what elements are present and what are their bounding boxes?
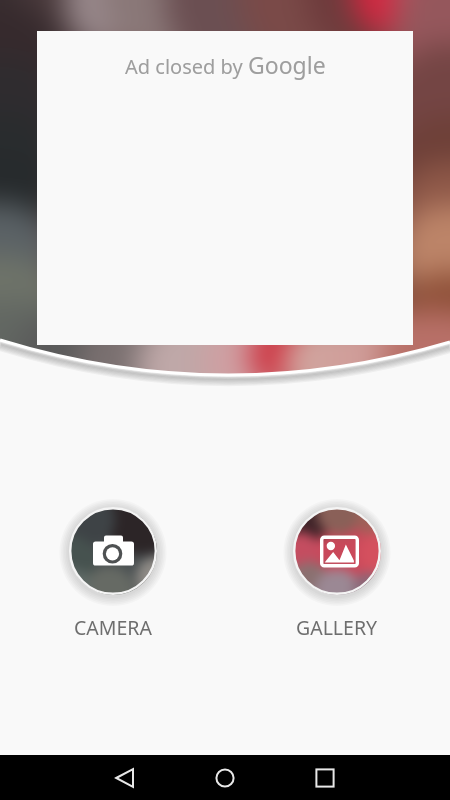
button[interactable]: Back bbox=[103, 756, 147, 800]
staticText: GALLERY bbox=[296, 614, 378, 641]
button[interactable]: Recents bbox=[303, 756, 347, 800]
button[interactable]: CAMERA bbox=[63, 501, 163, 601]
staticText: Google bbox=[248, 49, 326, 80]
staticText: CAMERA bbox=[74, 614, 152, 641]
button[interactable]: GALLERY bbox=[287, 501, 387, 601]
button[interactable]: Home bbox=[203, 756, 247, 800]
staticText: Ad closed by bbox=[125, 53, 248, 80]
